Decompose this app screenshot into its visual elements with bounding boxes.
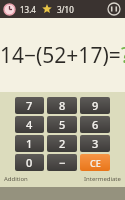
button[interactable]: 9: [80, 97, 110, 114]
button[interactable]: 5: [47, 116, 77, 133]
staticText: ?: [121, 41, 125, 70]
staticText: Intermediate: [84, 175, 121, 183]
staticText: 8: [59, 98, 66, 113]
staticText: CE: [90, 157, 101, 169]
staticText: 7: [26, 98, 33, 113]
staticText: 9: [92, 98, 99, 113]
button[interactable]: −: [47, 154, 77, 171]
button[interactable]: CE: [80, 154, 110, 171]
staticText: −: [59, 155, 66, 170]
staticText: 5: [59, 117, 66, 132]
button[interactable]: 4: [15, 116, 44, 133]
staticText: 4: [26, 117, 33, 132]
staticText: 3/10: [57, 4, 74, 15]
button[interactable]: Pause: [107, 2, 121, 16]
staticText: Addition: [4, 175, 28, 183]
button[interactable]: 1: [15, 135, 44, 152]
button[interactable]: 6: [80, 116, 110, 133]
button[interactable]: 7: [15, 97, 44, 114]
staticText: 0: [26, 155, 33, 170]
staticText: 3: [92, 136, 99, 151]
button[interactable]: 3: [80, 135, 110, 152]
button[interactable]: 0: [15, 154, 44, 171]
staticText: 13.4: [20, 4, 36, 15]
staticText: 1: [26, 136, 33, 151]
staticText: 6: [92, 117, 99, 132]
staticText: 2: [59, 136, 66, 151]
button[interactable]: 8: [47, 97, 77, 114]
staticText: 14−(52+17)=: [0, 41, 121, 70]
button[interactable]: 2: [47, 135, 77, 152]
